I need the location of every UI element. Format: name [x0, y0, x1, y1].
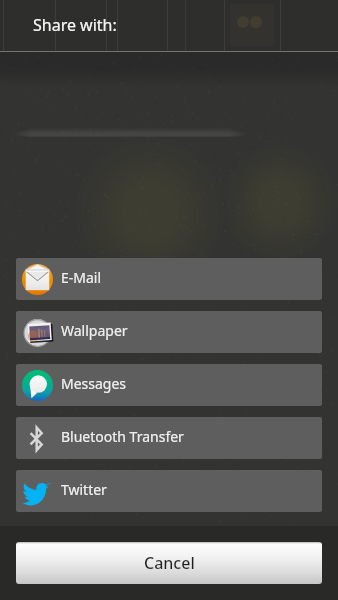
button[interactable]: Cancel — [16, 542, 322, 584]
button[interactable]: Wallpaper — [16, 311, 322, 353]
button[interactable]: E-Mail — [16, 258, 322, 300]
button[interactable]: Bluetooth — [16, 417, 322, 459]
button[interactable]: Twitter — [16, 470, 322, 512]
staticText: Bluetooth Transfer — [61, 427, 184, 446]
button[interactable]: Messages — [16, 364, 322, 406]
staticText: E-Mail — [61, 268, 102, 287]
staticText: Cancel — [144, 552, 195, 574]
staticText: Wallpaper — [61, 321, 128, 340]
staticText: Share with: — [33, 14, 117, 36]
other: Bluetooth — [24, 425, 51, 452]
staticText: Messages — [61, 374, 127, 393]
staticText: Twitter — [61, 480, 107, 499]
